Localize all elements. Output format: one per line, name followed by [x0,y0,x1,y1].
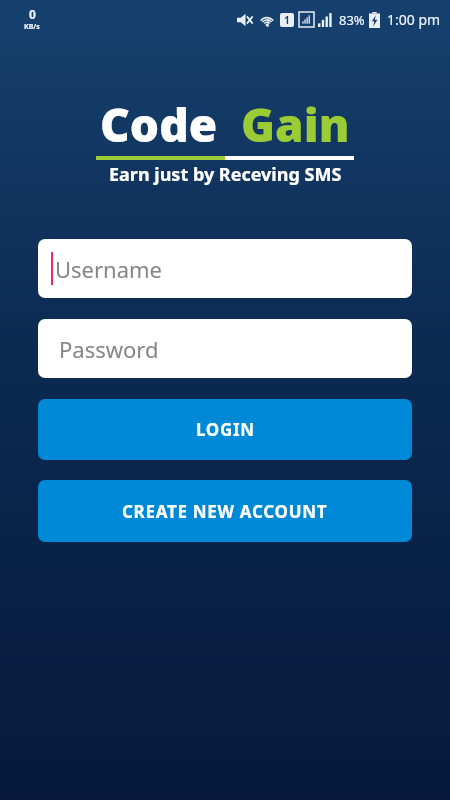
staticText: Username [55,254,163,284]
staticText: 1:00 pm [387,10,441,29]
staticText: 1 [284,13,290,27]
staticText: CREATE NEW ACCOUNT [122,500,328,523]
staticText: Password [59,334,159,364]
staticText: 83% [339,11,365,29]
staticText: KB/s [24,22,40,32]
staticText: 0 [29,6,36,22]
button[interactable]: Username [38,239,412,298]
button[interactable]: LOGIN [38,399,412,460]
staticText: Code Gain [100,93,350,156]
staticText: Earn just by Receving SMS [109,162,342,187]
staticText: LOGIN [196,418,255,441]
button[interactable]: Password [38,319,412,378]
button[interactable]: CREATE NEW ACCOUNT [38,480,412,542]
